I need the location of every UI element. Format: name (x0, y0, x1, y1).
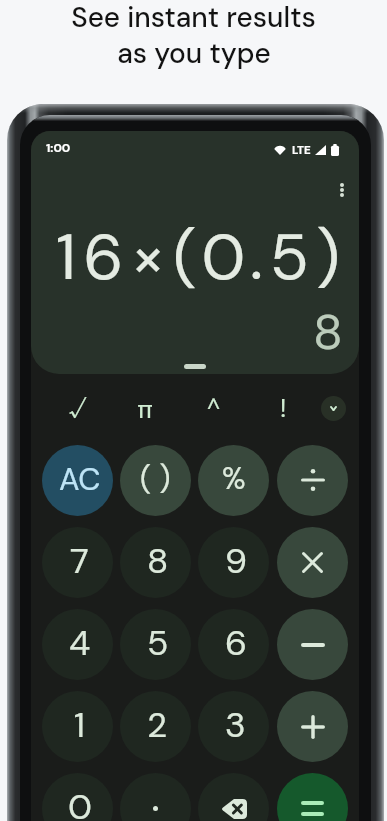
staticText: 1 (74, 702, 85, 748)
staticText: See instant results (71, 0, 316, 35)
button[interactable]: Add (277, 691, 348, 762)
button[interactable]: AC (42, 445, 113, 516)
staticText: ^ (207, 392, 221, 419)
button[interactable]: 2 (120, 691, 191, 762)
staticText: ( ) (140, 459, 171, 498)
button[interactable]: ^ (190, 387, 238, 429)
button[interactable]: Multiply (277, 527, 348, 598)
staticText: ! (280, 392, 287, 425)
button[interactable]: More options (330, 169, 354, 211)
button[interactable]: Expand keypad (321, 396, 346, 421)
staticText: 6 (225, 620, 247, 666)
staticText: π (137, 393, 154, 426)
button[interactable]: Subtract (277, 609, 348, 680)
button[interactable]: 5 (120, 609, 191, 680)
staticText: 5 (147, 620, 169, 666)
button[interactable]: 8 (120, 527, 191, 598)
button[interactable]: % (198, 445, 269, 516)
button[interactable]: 1 (42, 691, 113, 762)
staticText: 0 (68, 784, 92, 821)
button[interactable]: Backspace (198, 773, 269, 821)
staticText: % (222, 459, 246, 498)
button[interactable]: 4 (42, 609, 113, 680)
button[interactable]: Equals (277, 773, 348, 821)
button[interactable]: ( ) (120, 445, 191, 516)
staticText: √ (69, 394, 86, 424)
staticText: 8 (313, 300, 343, 362)
button[interactable]: 6 (198, 609, 269, 680)
button[interactable]: √ (53, 387, 101, 429)
button[interactable]: 9 (198, 527, 269, 598)
button[interactable]: 3 (198, 691, 269, 762)
button[interactable]: 7 (42, 527, 113, 598)
staticText: 16×(0.5) (56, 216, 348, 294)
staticText: 2 (147, 702, 168, 748)
staticText: 3 (225, 702, 246, 748)
staticText: 4 (69, 620, 91, 666)
staticText: 1:00 (46, 140, 71, 156)
button[interactable]: π (121, 387, 169, 429)
staticText: AC (59, 459, 101, 499)
button[interactable]: Divide (277, 445, 348, 516)
staticText: 9 (225, 538, 247, 584)
button[interactable]: ! (259, 387, 307, 429)
button[interactable]: 0 (42, 773, 113, 821)
staticText: 7 (70, 538, 89, 584)
staticText: as you type (117, 35, 271, 71)
staticText: LTE (292, 143, 311, 158)
button[interactable]: Decimal point (120, 773, 191, 821)
staticText: 8 (147, 538, 169, 584)
